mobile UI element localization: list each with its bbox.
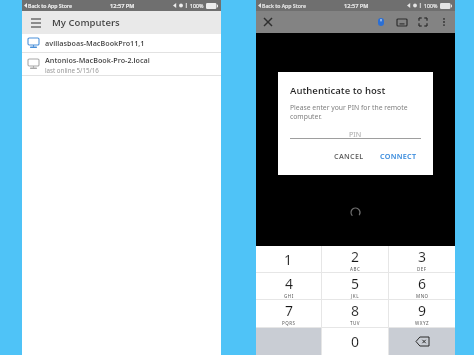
staticText: WXYZ: [415, 320, 430, 326]
button[interactable]: 6: [389, 273, 455, 299]
staticText: Antonios-MacBook-Pro-2.local: [45, 55, 150, 65]
button[interactable]: 7: [256, 300, 321, 327]
button[interactable]: Close: [260, 14, 276, 30]
button[interactable]: Mouse: [373, 14, 389, 30]
button[interactable]: avillasboas-MacBookPro11,1: [22, 34, 221, 52]
staticText: 8: [351, 301, 360, 320]
staticText: CONNECT: [380, 151, 417, 161]
staticText: 12:57 PM: [110, 2, 135, 10]
staticText: 100%: [424, 2, 438, 9]
staticText: 2: [351, 247, 360, 266]
button[interactable]: 5: [322, 273, 388, 299]
staticText: 12:57 PM: [344, 2, 369, 10]
button[interactable]: CONNECT: [376, 149, 421, 163]
staticText: 1: [284, 250, 293, 269]
staticText: 0: [351, 332, 360, 351]
staticText: JKL: [351, 293, 360, 299]
staticText: 3: [418, 247, 427, 266]
staticText: 9: [418, 301, 427, 320]
button[interactable]: Antonios-MacBook-Pro-2.local: [22, 53, 221, 75]
staticText: PIN: [349, 129, 362, 139]
staticText: 100%: [190, 2, 204, 9]
staticText: PQRS: [282, 320, 296, 326]
button[interactable]: 9: [389, 300, 455, 327]
staticText: 6: [418, 274, 427, 293]
button[interactable]: 3: [389, 246, 455, 272]
button[interactable]: CANCEL: [330, 149, 368, 163]
staticText: Back to App Store: [28, 2, 72, 9]
staticText: TUV: [350, 320, 361, 326]
staticText: ABC: [350, 266, 361, 272]
button[interactable]: Fullscreen: [415, 14, 431, 30]
staticText: avillasboas-MacBookPro11,1: [45, 38, 145, 48]
staticText: 5: [351, 274, 360, 293]
button[interactable]: 2: [322, 246, 388, 272]
button[interactable]: 0: [322, 328, 388, 355]
staticText: last online 5/15/16: [45, 66, 99, 74]
staticText: MNO: [416, 293, 429, 299]
staticText: Please enter your PIN for the remote com…: [290, 103, 421, 121]
staticText: DEF: [417, 266, 427, 272]
button[interactable]: Keyboard: [394, 14, 410, 30]
button[interactable]: Menu: [27, 14, 45, 32]
button[interactable]: 4: [256, 273, 321, 299]
button[interactable]: Backspace: [389, 328, 455, 355]
staticText: 7: [285, 301, 294, 320]
staticText: GHI: [284, 293, 294, 299]
staticText: Authenticate to host: [290, 84, 386, 97]
button[interactable]: 1: [256, 246, 321, 272]
button[interactable]: More options: [436, 14, 452, 30]
staticText: CANCEL: [334, 151, 364, 161]
staticText: Back to App Store: [262, 2, 306, 9]
button[interactable]: 8: [322, 300, 388, 327]
staticText: My Computers: [52, 16, 120, 29]
staticText: 4: [285, 274, 294, 293]
